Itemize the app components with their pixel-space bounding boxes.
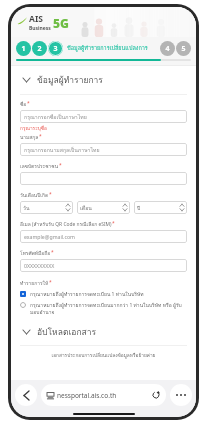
staticText: กรุณาระบุชื่อ: [20, 124, 47, 132]
other: Open ปี selector: [180, 204, 184, 211]
other: Collapse section: [20, 326, 32, 338]
staticText: example@gmail.com: [24, 233, 75, 240]
button[interactable]: example@gmail.com: [20, 230, 187, 243]
button[interactable]: 4: [160, 41, 175, 56]
button[interactable]: เดือน: [77, 201, 130, 214]
staticText: เอกสารประกอบการเปลี่ยนแปลงข้อมูลหรือย้าย…: [20, 351, 187, 359]
staticText: 0XXXXXXXXX: [24, 262, 55, 269]
other: Collapse section: [20, 74, 32, 86]
staticText: ข้อมูลผู้ทำรายการเปลี่ยนแปลงการ: [67, 44, 160, 53]
button[interactable]: 0XXXXXXXXX: [20, 259, 187, 272]
button[interactable]: กรุณาหมายถึงผู้ทำรายการจดทะเบียนมากกว่า …: [20, 301, 187, 316]
staticText: กรุณากรอกนามสกุลเป็นภาษาไทย: [24, 146, 100, 154]
staticText: ปี: [137, 204, 141, 212]
button[interactable]: Collapse section: [20, 325, 187, 339]
staticText: ข้อมูลผู้ทำรายการ: [37, 73, 103, 87]
button[interactable]: Back: [15, 384, 37, 406]
staticText: อัปโหลดเอกสาร: [37, 325, 97, 339]
staticText: 1: [21, 44, 26, 54]
staticText: โทรศัพท์มือถือ: [20, 249, 51, 257]
staticText: *: [49, 191, 52, 198]
staticText: เลขบัตรประชาชน: [20, 162, 59, 170]
other: Reload: [152, 391, 160, 399]
staticText: 3: [53, 44, 58, 54]
staticText: วัน: [23, 204, 30, 212]
button[interactable]: 5: [176, 41, 191, 56]
staticText: ชื่อ: [20, 100, 27, 108]
staticText: เดือน: [80, 204, 92, 212]
staticText: กรุณาหมายถึงผู้ทำรายการจดทะเบียน 1 ท่านใ…: [30, 290, 187, 298]
staticText: nessportal.ais.co.th: [57, 391, 152, 400]
button[interactable]: nessportal.ais.co.th: [41, 384, 166, 406]
button[interactable]: Collapse section: [20, 73, 187, 87]
staticText: 5G: [53, 15, 69, 31]
staticText: อีเมล (สำหรับรับ QR Code กรณีเลือก eSIM): [20, 220, 112, 228]
button[interactable]: กรุณาหมายถึงผู้ทำรายการจดทะเบียน 1 ท่านใ…: [20, 290, 187, 298]
button[interactable]: วัน: [20, 201, 73, 214]
staticText: กรุณาหมายถึงผู้ทำรายการจดทะเบียนมากกว่า …: [30, 301, 187, 316]
staticText: *: [112, 220, 115, 227]
other: Open วัน selector: [66, 204, 70, 211]
staticText: 2: [37, 44, 42, 54]
button[interactable]: 2: [32, 41, 47, 56]
staticText: ทำรายการให้: [20, 279, 49, 287]
staticText: *: [51, 249, 54, 256]
button[interactable]: 1: [16, 41, 31, 56]
button[interactable]: กรุณากรอกนามสกุลเป็นภาษาไทย: [20, 143, 187, 156]
button[interactable]: กรุณากรอกชื่อเป็นภาษาไทย: [20, 110, 187, 123]
staticText: วันเดือนปีเกิด: [20, 191, 49, 199]
staticText: กรุณากรอกชื่อเป็นภาษาไทย: [24, 113, 87, 121]
button[interactable]: More options: [170, 384, 192, 406]
staticText: 4: [165, 44, 170, 54]
button[interactable]: ปี: [134, 201, 187, 214]
staticText: 5: [181, 44, 186, 54]
button[interactable]: [20, 172, 187, 185]
other: Open เดือน selector: [123, 204, 127, 211]
staticText: *: [39, 133, 42, 140]
staticText: *: [49, 279, 52, 286]
staticText: Business: [29, 25, 51, 32]
staticText: AIS: [29, 13, 43, 25]
staticText: นามสกุล: [20, 133, 39, 141]
staticText: *: [27, 100, 30, 107]
staticText: *: [59, 162, 62, 169]
button[interactable]: 3: [48, 41, 63, 56]
